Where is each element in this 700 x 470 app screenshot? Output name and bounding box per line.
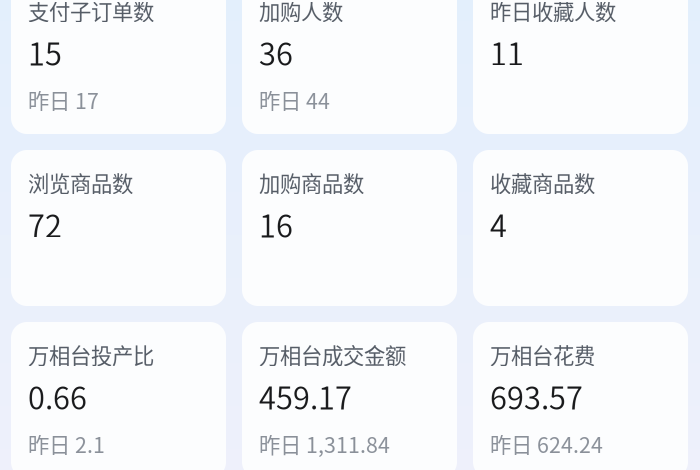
staticText: 加购商品数 (259, 167, 364, 198)
button[interactable]: 收藏商品数 (473, 150, 688, 306)
staticText: 万相台花费 (490, 339, 595, 370)
staticText: 693.57 (490, 374, 583, 418)
button[interactable]: 加购人数 (242, 0, 457, 134)
staticText: 459.17 (259, 374, 352, 418)
button[interactable]: 加购商品数 (242, 150, 457, 306)
button[interactable]: 万相台花费 (473, 322, 688, 470)
staticText: 浏览商品数 (28, 167, 133, 198)
staticText: 4 (490, 202, 507, 246)
staticText: 昨日 1,311.84 (259, 428, 390, 459)
staticText: 72 (28, 202, 62, 246)
staticText: 昨日 2.1 (28, 428, 105, 459)
button[interactable]: 昨日收藏人数 (473, 0, 688, 134)
staticText: 昨日 44 (259, 84, 330, 115)
staticText: 0.66 (28, 374, 87, 418)
staticText: 收藏商品数 (490, 167, 595, 198)
staticText: 加购人数 (259, 0, 343, 26)
button[interactable]: 支付子订单数 (11, 0, 226, 134)
staticText: 15 (28, 30, 62, 74)
staticText: 昨日收藏人数 (490, 0, 616, 26)
staticText: 11 (490, 30, 524, 74)
staticText: 36 (259, 30, 293, 74)
staticText: 支付子订单数 (28, 0, 154, 26)
staticText: 昨日 624.24 (490, 428, 603, 459)
button[interactable]: 万相台投产比 (11, 322, 226, 470)
staticText: 万相台投产比 (28, 339, 154, 370)
button[interactable]: 万相台成交金额 (242, 322, 457, 470)
button[interactable]: 浏览商品数 (11, 150, 226, 306)
staticText: 16 (259, 202, 293, 246)
staticText: 万相台成交金额 (259, 339, 406, 370)
staticText: 昨日 17 (28, 84, 99, 115)
